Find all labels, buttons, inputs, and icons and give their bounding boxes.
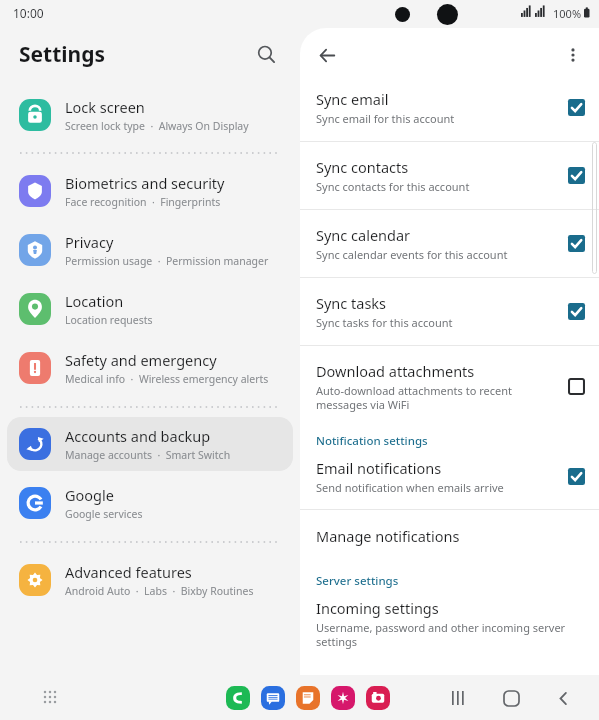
staticText: Manage notifications [316,526,460,546]
button[interactable]: Back [551,686,575,710]
button[interactable]: Email notifications [300,452,599,509]
staticText: Sync email for this account [316,111,455,126]
button[interactable]: cam [366,686,390,710]
button[interactable]: Apps [38,685,64,711]
button[interactable]: Search [252,40,280,68]
staticText: Incoming settings [316,598,439,618]
staticText: Medical info · Wireless emergency alerts [65,372,269,386]
staticText: Location [65,291,124,311]
button[interactable]: Sync calendar [300,210,599,277]
staticText: Google [65,485,114,505]
button[interactable]: Privacy [7,223,293,277]
button[interactable]: Sync contacts [300,142,599,209]
staticText: Sync email [316,89,389,109]
button[interactable]: star [331,686,355,710]
button[interactable]: Biometrics and security [7,164,293,218]
button[interactable]: Toggle [568,468,585,485]
staticText: Sync tasks [316,293,387,313]
staticText: Accounts and backup [65,426,211,446]
staticText: Google services [65,507,143,521]
staticText: Biometrics and security [65,173,225,193]
staticText: Send notification when emails arrive [316,480,504,495]
button[interactable]: Toggle [568,99,585,116]
button[interactable]: Location [7,282,293,336]
staticText: Notification settings [316,433,428,449]
staticText: Email notifications [316,458,442,478]
button[interactable]: Toggle [568,378,585,395]
button[interactable]: Safety and emergency [7,341,293,395]
staticText: Server settings [316,573,399,589]
staticText: Sync contacts [316,157,409,177]
button[interactable]: Back [312,40,342,70]
button[interactable]: Toggle [568,167,585,184]
button[interactable]: Manage notifications [300,510,599,560]
staticText: 10:00 [13,5,44,21]
button[interactable]: Google [7,476,293,530]
button[interactable]: Advanced features [7,553,293,607]
button[interactable]: Toggle [568,303,585,320]
staticText: Advanced features [65,562,192,582]
button[interactable]: Accounts and backup [7,417,293,471]
button[interactable]: Download attachments [300,346,599,420]
staticText: Settings [19,40,106,69]
button[interactable]: Recents [447,686,471,710]
button[interactable]: note [296,686,320,710]
button[interactable]: Toggle [568,235,585,252]
button[interactable]: Lock screen [7,88,293,142]
button[interactable]: Home [499,686,523,710]
staticText: Android Auto · Labs · Bixby Routines [65,584,254,598]
button[interactable]: Incoming settings [300,592,599,663]
button[interactable]: msg [261,686,285,710]
staticText: Sync tasks for this account [316,315,453,330]
staticText: Location requests [65,313,153,327]
staticText: 100% [553,6,582,21]
staticText: Permission usage · Permission manager [65,254,269,268]
staticText: Sync contacts for this account [316,179,470,194]
staticText: Download attachments [316,361,475,381]
staticText: Sync calendar [316,225,411,245]
button[interactable]: Sync tasks [300,278,599,345]
staticText: Face recognition · Fingerprints [65,195,221,209]
staticText: Manage accounts · Smart Switch [65,448,231,462]
staticText: Sync calendar events for this account [316,247,508,262]
staticText: Screen lock type · Always On Display [65,119,249,133]
button[interactable]: Sync email [300,82,599,141]
button[interactable]: phone [226,686,250,710]
staticText: Username, password and other incoming se… [316,620,585,649]
staticText: Safety and emergency [65,350,217,370]
staticText: Privacy [65,232,114,252]
staticText: Auto-download attachments to recent mess… [316,383,558,412]
button[interactable]: More options [559,41,587,69]
staticText: Lock screen [65,97,145,117]
